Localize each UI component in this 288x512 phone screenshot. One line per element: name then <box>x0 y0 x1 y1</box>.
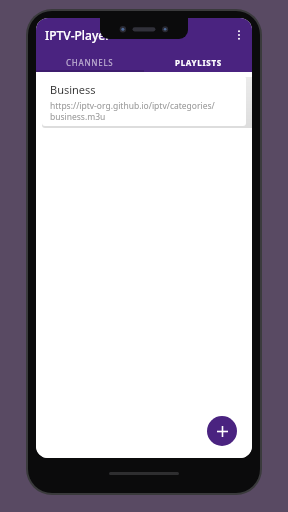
button[interactable]: PLAYLISTS <box>144 52 252 72</box>
button[interactable]: Business <box>42 76 246 126</box>
button[interactable]: Add playlist <box>207 416 237 446</box>
staticText: IPTV-Player <box>45 27 111 43</box>
staticText: CHANNELS <box>66 57 114 68</box>
staticText: Business <box>50 82 96 97</box>
staticText: PLAYLISTS <box>175 57 222 68</box>
button[interactable]: CHANNELS <box>36 52 144 72</box>
staticText: https://iptv-org.github.io/iptv/categori… <box>50 100 238 122</box>
button[interactable]: More options <box>226 22 252 48</box>
